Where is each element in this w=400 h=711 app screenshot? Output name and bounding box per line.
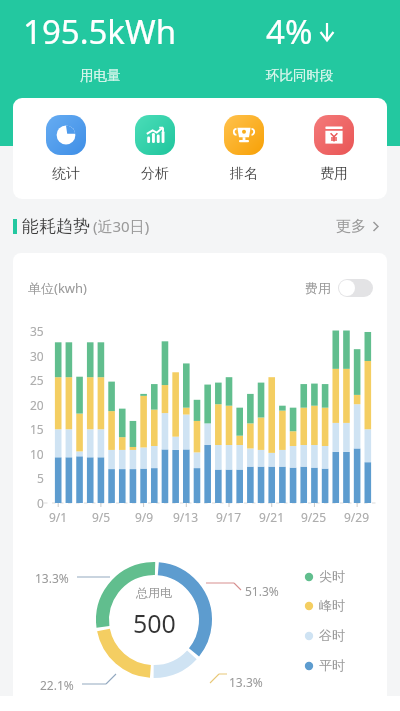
staticText: 30 — [30, 348, 44, 364]
staticText: 更多 — [336, 217, 366, 236]
staticText: 用电量 — [80, 67, 121, 84]
staticText: 13.3% — [35, 570, 69, 586]
staticText: 9/21 — [259, 509, 285, 525]
staticText: 9/13 — [173, 509, 199, 525]
staticText: 能耗趋势 — [22, 216, 90, 237]
staticText: (近30日) — [93, 216, 150, 236]
staticText: 5 — [37, 470, 44, 486]
staticText: 9/1 — [49, 509, 68, 525]
staticText: 10 — [30, 446, 44, 462]
staticText: 4% — [266, 9, 313, 54]
staticText: 25 — [30, 372, 44, 388]
staticText: 9/29 — [344, 509, 370, 525]
staticText: 9/5 — [92, 509, 111, 525]
button[interactable]: 费用 — [289, 115, 379, 183]
staticText: 费用 — [320, 165, 348, 183]
button[interactable]: 排名 — [199, 115, 289, 183]
staticText: 0 — [37, 495, 44, 511]
staticText: 20 — [30, 397, 44, 413]
staticText: 9/17 — [216, 509, 242, 525]
staticText: 费用 — [305, 280, 331, 296]
staticText: 总用电 — [136, 585, 172, 600]
staticText: 51.3% — [245, 583, 279, 599]
staticText: 15 — [30, 421, 44, 437]
staticText: 单位(kwh) — [28, 279, 87, 297]
staticText: 排名 — [230, 165, 258, 183]
staticText: 统计 — [52, 165, 80, 183]
staticText: 9/25 — [301, 509, 327, 525]
staticText: 分析 — [141, 165, 169, 183]
staticText: 峰时 — [319, 597, 345, 613]
staticText: 谷时 — [319, 627, 345, 643]
staticText: 尖时 — [319, 568, 345, 584]
staticText: 500 — [133, 606, 176, 640]
button[interactable]: 分析 — [110, 115, 199, 183]
button[interactable]: 统计 — [21, 115, 110, 183]
staticText: 35 — [30, 323, 44, 339]
staticText: 13.3% — [229, 674, 263, 690]
staticText: 195.5kWh — [23, 9, 177, 54]
button[interactable]: 费用开关 — [338, 279, 373, 297]
staticText: 环比同时段 — [266, 67, 334, 84]
staticText: 平时 — [319, 657, 345, 673]
button[interactable]: 更多 — [336, 217, 380, 236]
staticText: 9/9 — [135, 509, 154, 525]
staticText: 22.1% — [40, 677, 74, 693]
